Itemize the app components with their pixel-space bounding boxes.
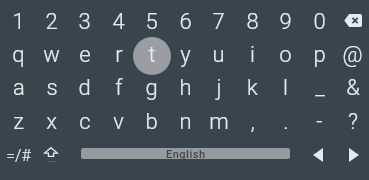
button[interactable]: l	[269, 71, 302, 104]
button[interactable]: 3	[68, 5, 101, 38]
button[interactable]: 0	[303, 5, 336, 38]
staticText: t	[148, 42, 156, 68]
button[interactable]: c	[68, 105, 101, 138]
staticText: 8	[246, 9, 259, 35]
staticText: s	[46, 75, 58, 101]
button[interactable]: r	[102, 38, 135, 71]
staticText: -	[316, 109, 323, 135]
button[interactable]: s	[35, 71, 68, 104]
button[interactable]: v	[102, 105, 135, 138]
button[interactable]: Shift	[35, 137, 67, 167]
staticText: .	[283, 109, 289, 135]
button[interactable]: Move cursor left	[303, 140, 333, 170]
staticText: v	[113, 109, 124, 135]
staticText: i	[250, 42, 255, 68]
staticText: d	[78, 75, 91, 101]
button[interactable]: ?	[336, 105, 369, 138]
staticText: n	[179, 109, 192, 135]
button[interactable]: .	[269, 105, 302, 138]
button[interactable]: j	[202, 71, 235, 104]
staticText: p	[313, 42, 326, 68]
button[interactable]: n	[169, 105, 202, 138]
button[interactable]: w	[35, 38, 68, 71]
button[interactable]: g	[135, 71, 168, 104]
staticText: &	[346, 75, 360, 101]
button[interactable]: i	[236, 38, 269, 71]
staticText: r	[115, 42, 123, 68]
button[interactable]: z	[2, 105, 35, 138]
staticText: @	[342, 42, 363, 68]
staticText: 3	[78, 9, 91, 35]
button[interactable]: u	[202, 38, 235, 71]
staticText: =/#	[6, 146, 31, 165]
button[interactable]: Move cursor right	[339, 140, 369, 170]
staticText: h	[179, 75, 192, 101]
button[interactable]: _	[303, 71, 336, 104]
staticText: 9	[279, 9, 292, 35]
button[interactable]: a	[2, 71, 35, 104]
staticText: z	[13, 109, 24, 135]
button[interactable]: o	[269, 38, 302, 71]
staticText: y	[180, 42, 191, 68]
button[interactable]: 9	[269, 5, 302, 38]
staticText: 6	[179, 9, 192, 35]
button[interactable]: 5	[135, 5, 168, 38]
button[interactable]: x	[35, 105, 68, 138]
staticText: 7	[212, 9, 225, 35]
staticText: k	[247, 75, 258, 101]
staticText: x	[46, 109, 57, 135]
button[interactable]: 4	[102, 5, 135, 38]
staticText: 0	[313, 9, 326, 35]
staticText: c	[79, 109, 91, 135]
staticText: 5	[145, 9, 158, 35]
button[interactable]: 6	[169, 5, 202, 38]
button[interactable]: e	[68, 38, 101, 71]
staticText: _	[315, 75, 325, 101]
staticText: a	[13, 75, 25, 101]
button[interactable]: f	[102, 71, 135, 104]
staticText: English	[166, 148, 206, 159]
button[interactable]: p	[303, 38, 336, 71]
staticText: m	[209, 109, 229, 135]
button[interactable]: h	[169, 71, 202, 104]
staticText: 4	[112, 9, 125, 35]
button[interactable]: English	[81, 148, 290, 159]
staticText: q	[12, 42, 25, 68]
staticText: g	[145, 75, 158, 101]
staticText: l	[283, 75, 288, 101]
button[interactable]: &	[336, 71, 369, 104]
staticText: e	[79, 42, 91, 68]
staticText: 2	[45, 9, 58, 35]
staticText: 1	[12, 9, 25, 35]
button[interactable]: d	[68, 71, 101, 104]
button[interactable]: Backspace	[336, 4, 369, 37]
staticText: o	[279, 42, 292, 68]
button[interactable]: 8	[236, 5, 269, 38]
button[interactable]: =/#	[0, 140, 36, 170]
button[interactable]: b	[135, 105, 168, 138]
button[interactable]: 2	[35, 5, 68, 38]
button[interactable]: -	[303, 105, 336, 138]
staticText: w	[43, 42, 60, 68]
staticText: f	[115, 75, 123, 101]
button[interactable]: ,	[236, 105, 269, 138]
staticText: u	[212, 42, 225, 68]
staticText: ?	[348, 109, 358, 135]
button[interactable]: @	[336, 38, 369, 71]
button[interactable]: 1	[2, 5, 35, 38]
button[interactable]: 7	[202, 5, 235, 38]
staticText: b	[145, 109, 158, 135]
staticText: ,	[250, 109, 255, 135]
button[interactable]: t	[135, 38, 168, 71]
button[interactable]: q	[2, 38, 35, 71]
staticText: j	[216, 75, 222, 101]
button[interactable]: y	[169, 38, 202, 71]
button[interactable]: k	[236, 71, 269, 104]
button[interactable]: m	[202, 105, 235, 138]
